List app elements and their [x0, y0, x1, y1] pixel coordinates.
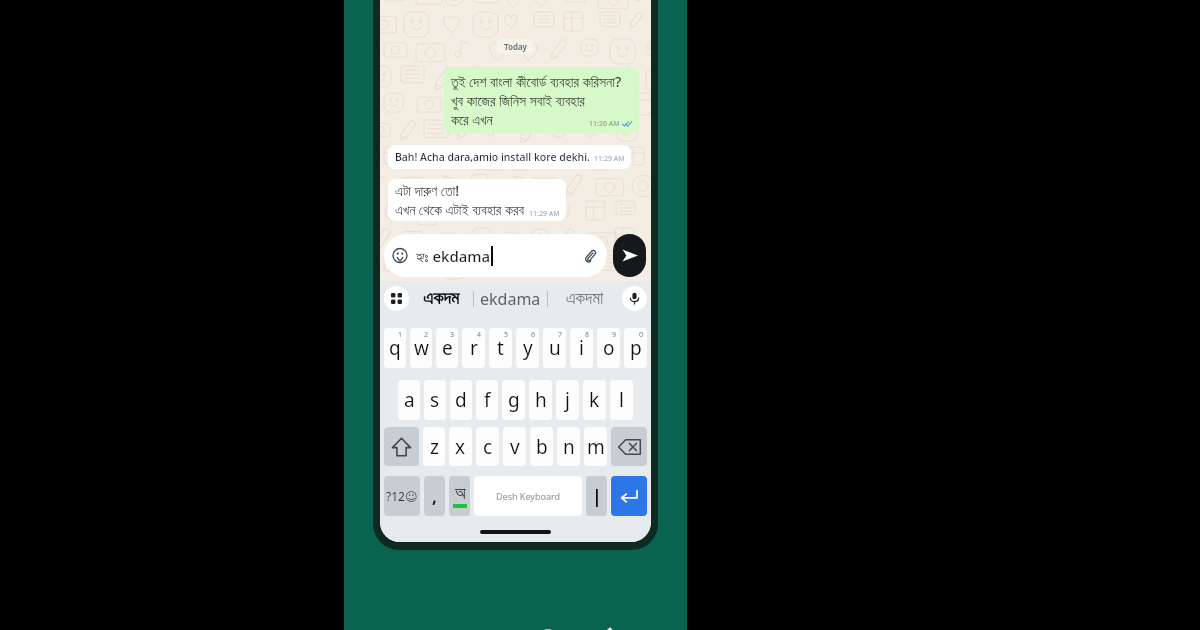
button[interactable]: Bah! Acha dara,amio install kore dekhi.	[388, 145, 631, 169]
staticText: p	[630, 335, 642, 361]
staticText: 6	[531, 330, 536, 340]
staticText: 9	[612, 330, 617, 340]
staticText: Bah! Acha dara,amio install kore dekhi.	[395, 150, 590, 164]
button[interactable]: Symbols	[384, 476, 420, 516]
staticText: x	[455, 434, 466, 460]
staticText: তুই দেশ বাংলা কীবোর্ড ব্যবহার করিসনা?	[451, 72, 622, 91]
button[interactable]: a	[398, 380, 420, 420]
button[interactable]: f	[476, 380, 498, 420]
staticText: d	[455, 387, 467, 413]
staticText: 8	[585, 330, 590, 340]
staticText: এটা দারুণ তো!	[395, 181, 460, 200]
staticText: 0	[639, 330, 644, 340]
button[interactable]: Backspace	[611, 427, 647, 466]
staticText: 3	[450, 330, 455, 340]
staticText: q	[389, 335, 401, 361]
button[interactable]: ekdama	[474, 281, 547, 316]
button[interactable]: g	[502, 380, 525, 420]
button[interactable]: z	[423, 427, 445, 466]
staticText: k	[589, 387, 600, 413]
staticText: w	[414, 335, 429, 361]
staticText: z	[430, 434, 439, 460]
button[interactable]: v	[503, 427, 526, 466]
staticText: Today	[504, 41, 527, 52]
staticText: b	[536, 434, 548, 460]
button[interactable]: 9	[597, 328, 620, 368]
button[interactable]: 8	[570, 328, 593, 368]
staticText: 11:29 AM	[594, 154, 625, 164]
button[interactable]: Keyboard options	[384, 286, 409, 311]
staticText: Desh Keyboard	[496, 490, 561, 502]
button[interactable]: Cursor	[586, 476, 607, 516]
button[interactable]: n	[557, 427, 580, 466]
button[interactable]: s	[424, 380, 446, 420]
staticText: o	[603, 335, 615, 361]
staticText: r	[470, 335, 478, 361]
staticText: g	[508, 387, 520, 413]
staticText: দেশ বাংলা কীবোর্ড	[422, 622, 610, 630]
button[interactable]: x	[449, 427, 472, 466]
button[interactable]: Space	[474, 476, 582, 516]
button[interactable]: h	[529, 380, 552, 420]
staticText: একদম	[423, 290, 459, 308]
staticText: m	[587, 434, 605, 460]
staticText: অ	[455, 485, 466, 502]
staticText: এখন থেকে এটাই ব্যবহার করব	[395, 200, 525, 219]
staticText: v	[510, 434, 520, 460]
staticText: খুব কাজের জিনিস সবাই ব্যবহার	[451, 91, 585, 110]
staticText: |	[592, 484, 602, 509]
staticText: 1	[398, 330, 403, 340]
button[interactable]: একদম	[409, 281, 473, 316]
button[interactable]: b	[530, 427, 553, 466]
staticText: 4	[477, 330, 482, 340]
staticText: y	[523, 335, 533, 361]
staticText: হ্যঃ ekdama	[416, 246, 491, 266]
staticText: f	[484, 387, 491, 413]
staticText: 7	[558, 330, 563, 340]
staticText: c	[483, 434, 493, 460]
staticText: e	[442, 335, 453, 361]
staticText: j	[565, 387, 570, 413]
button[interactable]: 2	[410, 328, 432, 368]
button[interactable]: k	[583, 380, 606, 420]
staticText: i	[579, 335, 584, 361]
staticText: ,	[432, 485, 437, 508]
button[interactable]: 1	[384, 328, 406, 368]
staticText: t	[497, 335, 504, 361]
staticText: a	[404, 387, 415, 413]
button[interactable]: 0	[624, 328, 647, 368]
button[interactable]: Shift	[384, 427, 419, 466]
button[interactable]: তুই দেশ বাংলা কীবোর্ড ব্যবহার করিসনা?	[444, 67, 639, 133]
staticText: ekdama	[480, 288, 541, 310]
button[interactable]: Comma	[424, 476, 445, 516]
staticText: একদমা	[566, 290, 604, 307]
staticText: n	[563, 434, 575, 460]
button[interactable]: হ্যঃ ekdama	[384, 234, 607, 277]
button[interactable]: d	[450, 380, 472, 420]
button[interactable]: এটা দারুণ তো!	[388, 179, 566, 221]
button[interactable]: 7	[543, 328, 566, 368]
staticText: ?12☺	[386, 488, 418, 504]
button[interactable]: j	[556, 380, 579, 420]
button[interactable]: l	[610, 380, 633, 420]
staticText: s	[430, 387, 440, 413]
button[interactable]: একদমা	[548, 281, 621, 316]
staticText: করে এখন	[451, 110, 493, 129]
button[interactable]: 4	[462, 328, 485, 368]
staticText: 5	[504, 330, 509, 340]
staticText: u	[549, 335, 561, 361]
button[interactable]: Send	[613, 234, 646, 277]
button[interactable]: m	[584, 427, 607, 466]
button[interactable]: Enter	[611, 476, 647, 516]
button[interactable]: Voice input	[622, 286, 647, 311]
staticText: 11:29 AM	[529, 209, 560, 219]
button[interactable]: Language	[449, 476, 470, 516]
staticText: 11:26 AM	[589, 119, 620, 129]
staticText: l	[619, 387, 624, 413]
staticText: h	[535, 387, 547, 413]
staticText: 2	[424, 330, 429, 340]
button[interactable]: 6	[516, 328, 539, 368]
button[interactable]: 5	[489, 328, 512, 368]
button[interactable]: 3	[436, 328, 458, 368]
button[interactable]: c	[476, 427, 499, 466]
